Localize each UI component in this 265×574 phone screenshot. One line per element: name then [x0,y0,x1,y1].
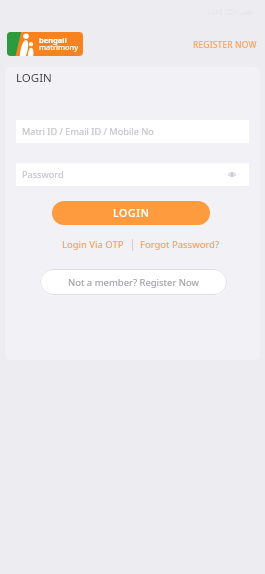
staticText: Password [22,168,64,181]
staticText: matrimony [39,42,78,52]
button[interactable]: Login Via OTP [62,238,124,251]
staticText: Login Via OTP [62,238,124,251]
staticText: LOGIN [16,70,52,86]
button[interactable]: Password [16,163,249,186]
staticText: Forgot Password? [140,238,220,251]
button[interactable]: LOGIN [52,201,210,225]
staticText: REGISTER NOW [193,39,257,51]
button[interactable]: REGISTER NOW [189,36,261,54]
button[interactable]: Forgot Password? [140,238,220,251]
staticText: bengali [39,35,67,45]
staticText: Not a member? Register Now [68,276,200,289]
staticText: Matri ID / Email ID / Mobile No [22,125,154,138]
button[interactable]: Not a member? Register Now [40,269,227,295]
staticText: LOGIN [113,206,150,220]
button[interactable]: Matri ID / Email ID / Mobile No [16,120,249,143]
button[interactable]: bengali matrimony home [7,32,83,56]
button[interactable]: Show password [224,166,240,182]
